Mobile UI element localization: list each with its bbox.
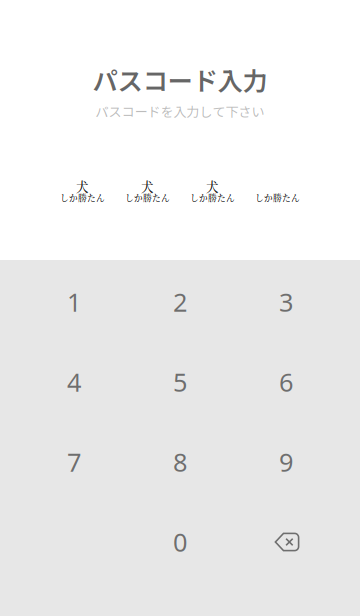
button[interactable]: 4 [21,342,127,422]
button[interactable]: 8 [127,422,233,502]
staticText: 2 [173,285,187,319]
button[interactable]: 7 [21,422,127,502]
staticText: 5 [173,365,187,399]
staticText: 犬 [76,177,89,195]
button[interactable]: 2 [127,262,233,342]
staticText: パスコード入力 [92,61,267,98]
staticText: 犬 [141,177,154,195]
staticText: しか勝たん [125,191,170,204]
button[interactable]: 5 [127,342,233,422]
button[interactable]: 9 [233,422,339,502]
staticText: 8 [173,445,187,479]
staticText: 4 [67,365,81,399]
staticText: 0 [173,525,187,559]
staticText: 7 [67,445,81,479]
staticText: 1 [67,285,81,319]
staticText: パスコードを入力して下さい [95,102,264,121]
staticText: 犬 [206,177,219,195]
staticText: 9 [279,445,293,479]
button[interactable]: Delete [233,502,339,582]
staticText: しか勝たん [60,191,105,204]
staticText: 3 [279,285,293,319]
button[interactable]: 3 [233,262,339,342]
staticText: しか勝たん [190,191,235,204]
staticText: 6 [279,365,293,399]
button[interactable]: 6 [233,342,339,422]
button[interactable]: 0 [127,502,233,582]
button[interactable]: 1 [21,262,127,342]
staticText: しか勝たん [255,191,300,204]
